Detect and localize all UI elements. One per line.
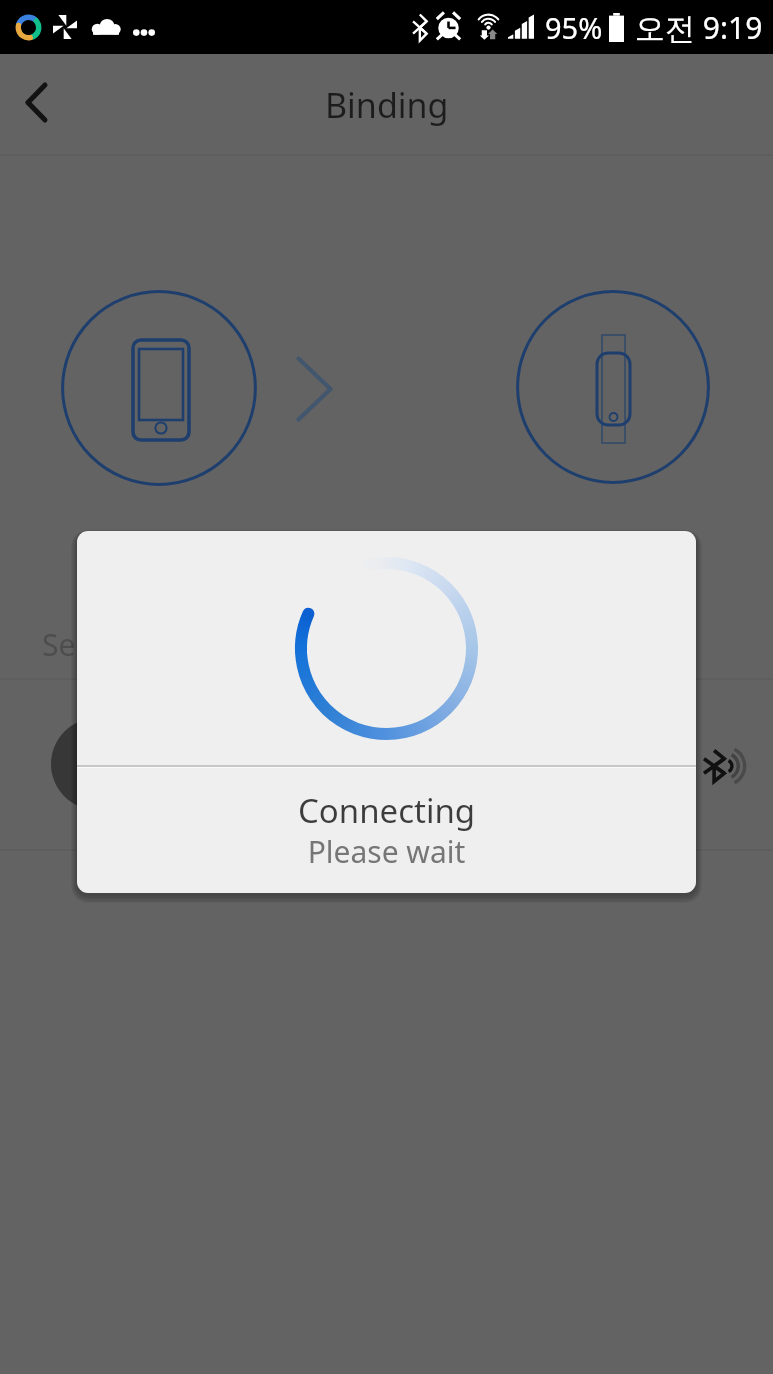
staticText: Connecting — [77, 788, 696, 833]
staticText: Search device — [42, 624, 234, 665]
staticText: 95% — [545, 8, 603, 47]
other: Bluetooth broadcasting — [704, 748, 751, 784]
staticText: 오전 9:19 — [635, 7, 763, 48]
staticText: Binding — [325, 82, 449, 128]
button[interactable]: Back — [0, 54, 76, 154]
staticText: Please wait — [77, 831, 696, 872]
button[interactable]: Bluetooth broadcasting — [0, 679, 773, 850]
